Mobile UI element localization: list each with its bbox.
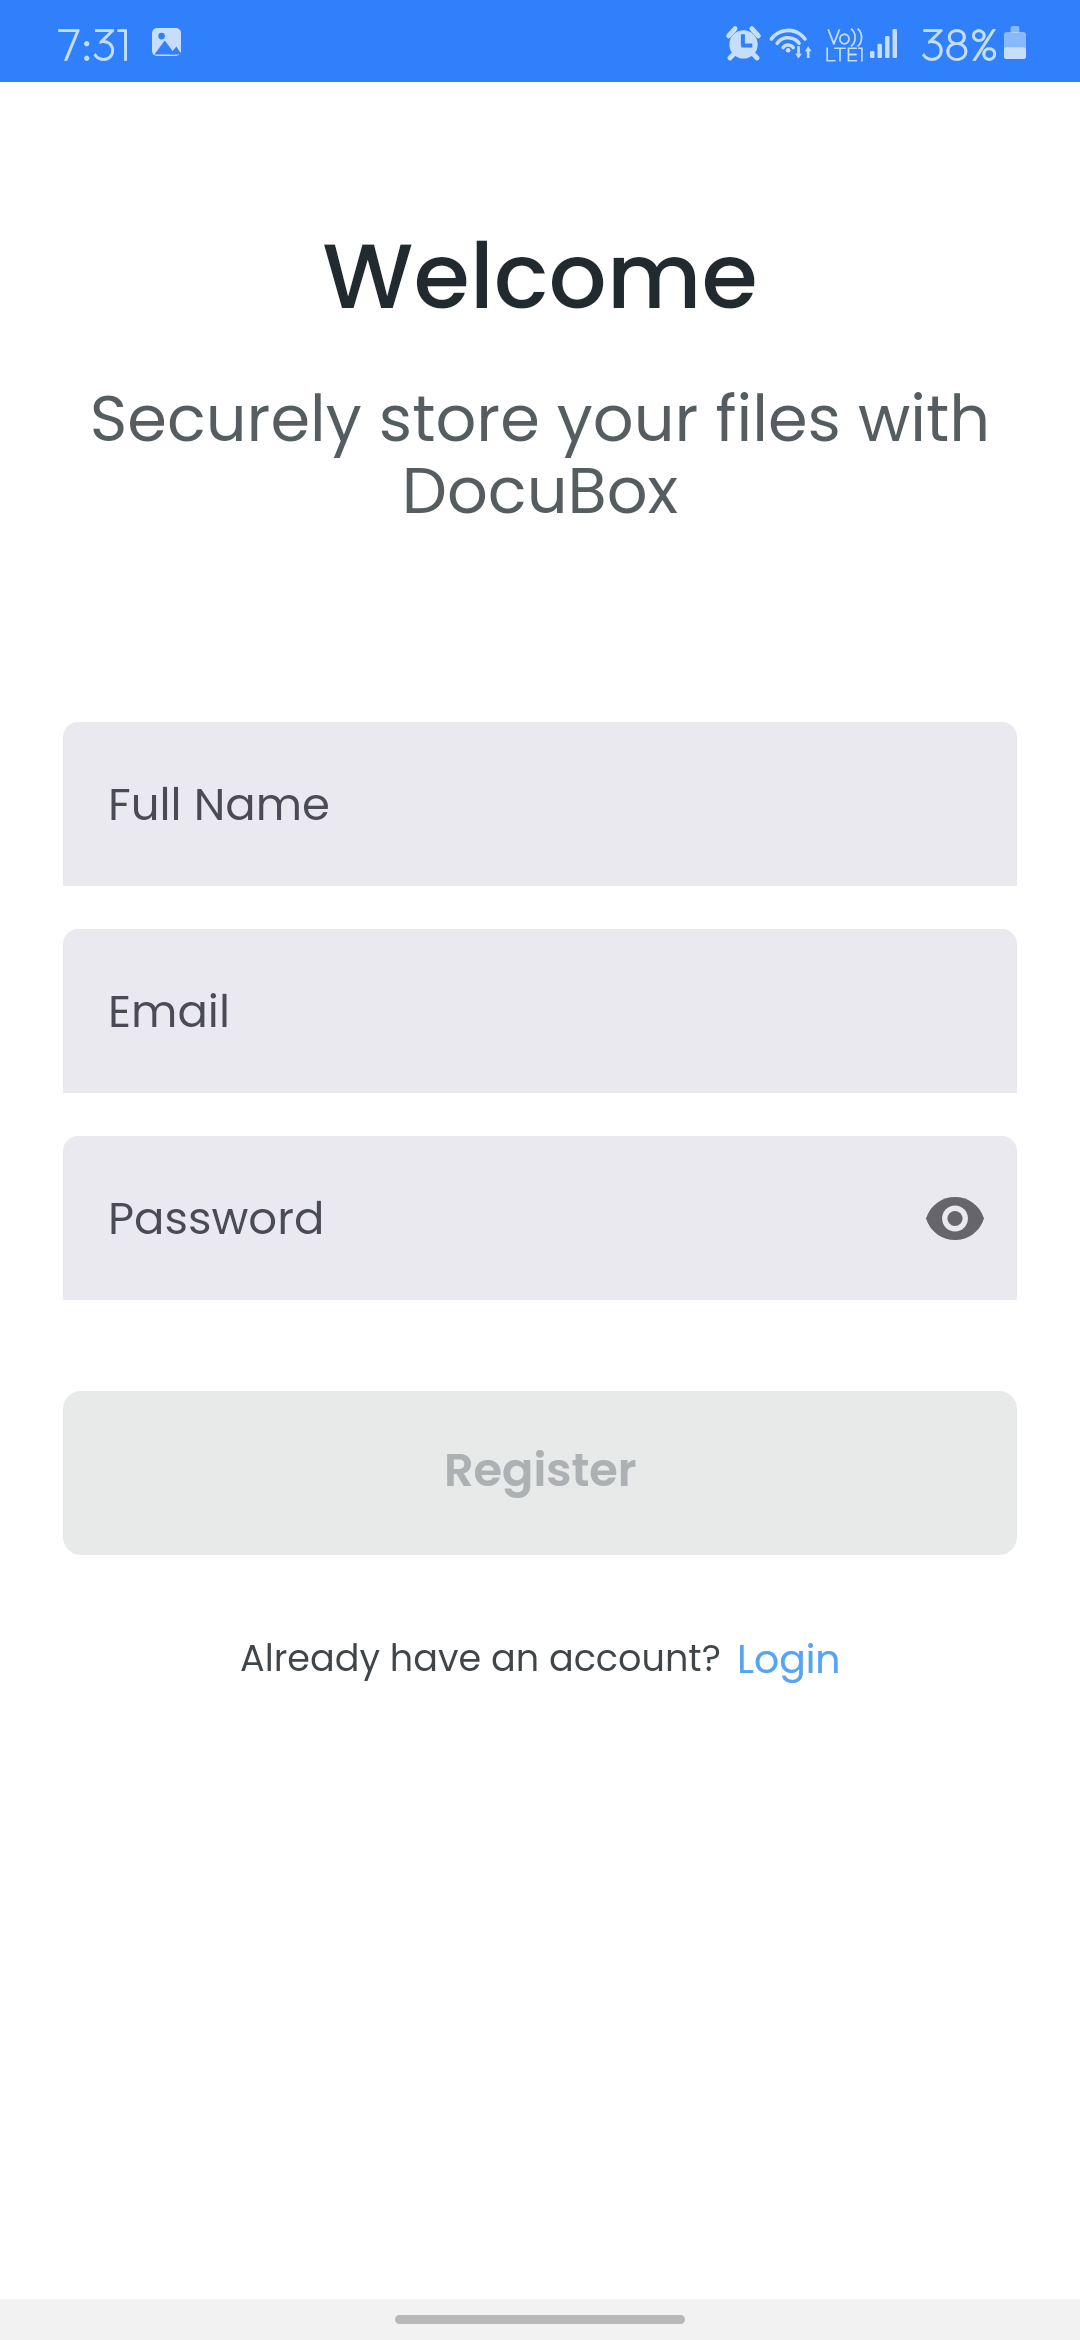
staticText: 7:31 — [57, 16, 131, 72]
staticText: Vo)) — [827, 23, 864, 49]
staticText: Email — [108, 980, 230, 1043]
staticText: Full Name — [108, 773, 330, 836]
button[interactable]: Show password — [910, 1173, 1000, 1263]
staticText: Already have an account? — [240, 1633, 721, 1684]
button[interactable]: Password — [63, 1136, 1017, 1300]
button[interactable]: Email — [63, 929, 1017, 1093]
button[interactable]: Register — [63, 1391, 1017, 1555]
staticText: Securely store your files with DocuBox — [87, 374, 993, 535]
button[interactable]: Full Name — [63, 722, 1017, 886]
staticText: Welcome — [0, 212, 1080, 340]
staticText: 38% — [921, 16, 999, 72]
staticText: Password — [108, 1187, 325, 1250]
staticText: LTE1 — [825, 41, 865, 66]
staticText: Register — [444, 1437, 637, 1502]
button[interactable]: Login — [737, 1632, 841, 1687]
staticText: Login — [737, 1632, 841, 1687]
